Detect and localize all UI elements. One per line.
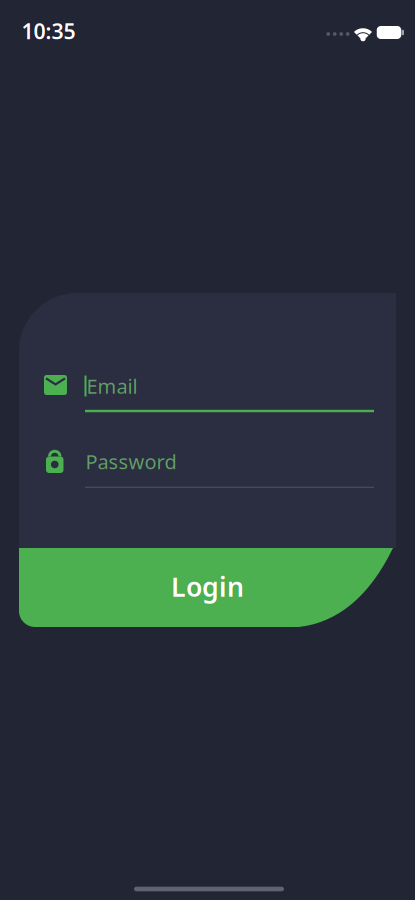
staticText: Email [86, 373, 137, 399]
button[interactable]: Login [19, 548, 396, 627]
staticText: Login [171, 569, 244, 604]
button[interactable]: Email [44, 370, 374, 414]
staticText: Password [85, 448, 176, 475]
staticText: 10:35 [21, 17, 75, 45]
button[interactable]: Password [44, 443, 374, 492]
